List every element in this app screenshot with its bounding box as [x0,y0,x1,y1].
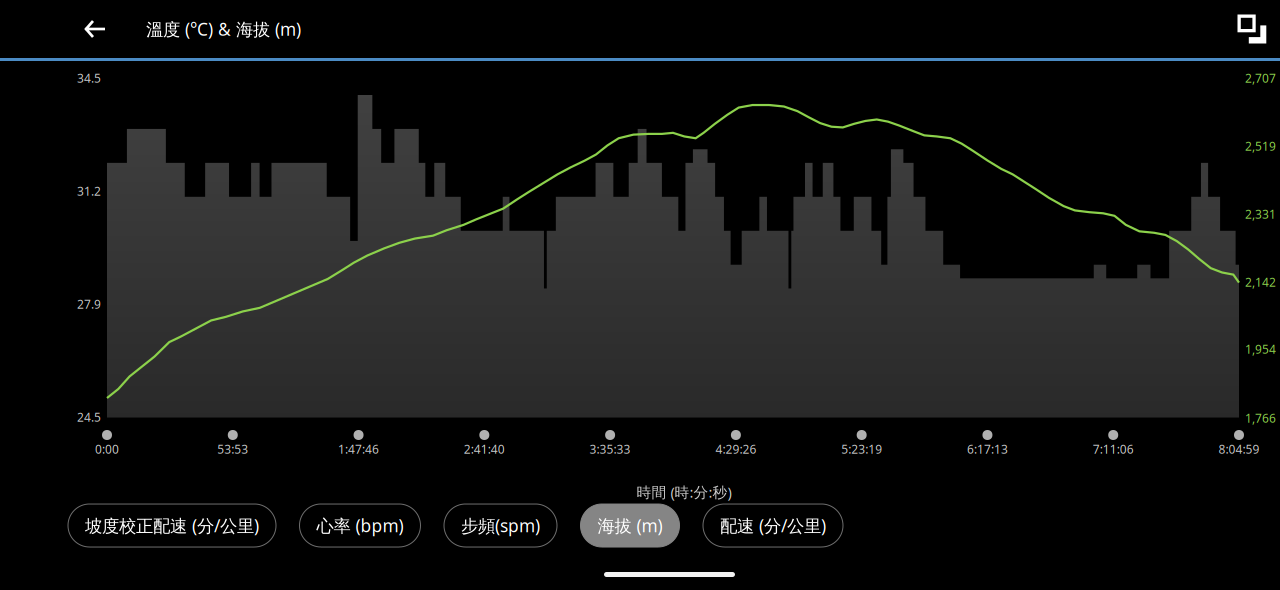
staticText: 坡度校正配速 (分/公里) [85,514,259,537]
staticText: 3:35:33 [590,441,631,457]
button[interactable]: 心率 (bpm) [299,504,420,547]
staticText: 2,707 [1245,70,1276,86]
button[interactable]: 坡度校正配速 (分/公里) [68,504,276,547]
staticText: 時間 (時:分:秒) [636,482,731,502]
staticText: 27.9 [77,296,101,312]
staticText: 6:17:13 [967,441,1008,457]
button[interactable]: Back [0,0,123,58]
staticText: 2:41:40 [464,441,505,457]
staticText: 配速 (分/公里) [720,514,826,537]
staticText: 2,519 [1245,138,1276,154]
staticText: 5:23:19 [841,441,882,457]
staticText: 31.2 [77,183,101,199]
staticText: 1:47:46 [338,441,379,457]
button[interactable]: Compare charts [1224,0,1280,58]
staticText: 步頻(spm) [461,514,540,537]
staticText: 53:53 [217,441,248,457]
staticText: 34.5 [77,70,101,86]
button[interactable]: 海拔 (m) [580,504,679,547]
staticText: 2,331 [1245,206,1276,222]
staticText: 24.5 [77,409,101,425]
staticText: 1,766 [1245,410,1276,426]
button[interactable]: 配速 (分/公里) [703,504,843,547]
staticText: 心率 (bpm) [316,514,403,537]
staticText: 2,142 [1245,274,1276,290]
staticText: 0:00 [95,441,119,457]
staticText: 海拔 (m) [597,514,662,537]
staticText: 4:29:26 [715,441,756,457]
staticText: 1,954 [1245,341,1276,357]
staticText: 7:11:06 [1093,441,1134,457]
staticText: 溫度 (°C) & 海拔 (m) [146,17,301,40]
staticText: 8:04:59 [1218,441,1259,457]
button[interactable]: 步頻(spm) [444,504,557,547]
